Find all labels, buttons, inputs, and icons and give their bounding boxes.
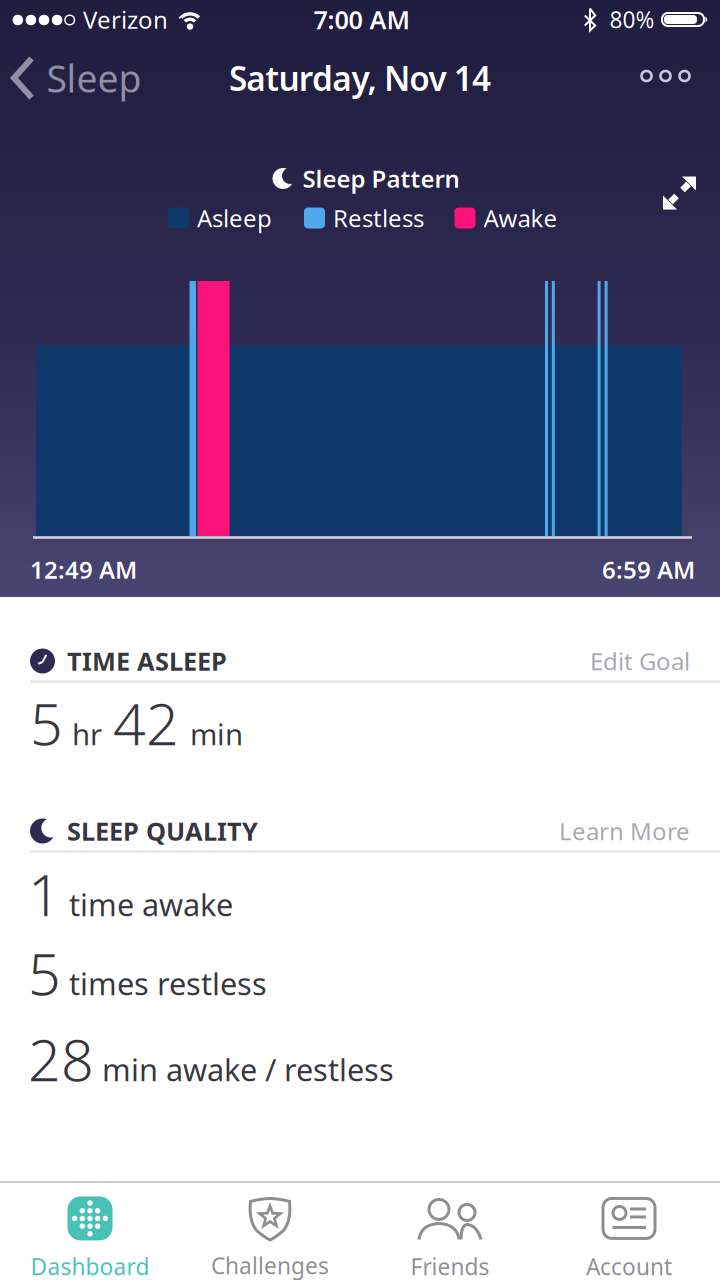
staticText: 80% [609, 4, 654, 34]
button[interactable]: Challenges [180, 1190, 360, 1280]
staticText: Challenges [211, 1250, 329, 1280]
staticText: Learn More [559, 815, 690, 847]
button[interactable]: Dashboard [0, 1191, 180, 1280]
staticText: Sleep Pattern [302, 163, 459, 194]
button[interactable]: Friends [360, 1191, 540, 1280]
staticText: min awake / restless [102, 1049, 394, 1090]
staticText: Saturday, Nov 14 [229, 56, 491, 100]
staticText: Asleep [197, 202, 272, 234]
staticText: Friends [410, 1251, 489, 1280]
staticText: Account [586, 1251, 672, 1280]
staticText: Sleep [46, 53, 141, 103]
staticText: 7:00 AM [313, 3, 410, 36]
staticText: Verizon [83, 4, 168, 35]
staticText: 28 [28, 1021, 94, 1097]
staticText: TIME ASLEEP [67, 644, 227, 678]
staticText: min [190, 714, 243, 753]
button[interactable]: Expand sleep pattern [663, 176, 696, 209]
button[interactable]: Account [539, 1192, 719, 1280]
staticText: 6:59 AM [602, 554, 695, 585]
staticText: 5 [28, 935, 61, 1011]
staticText: 1 [28, 856, 61, 932]
staticText: Edit Goal [590, 645, 690, 677]
button[interactable]: Learn More [559, 815, 690, 847]
button[interactable]: More options [641, 71, 689, 81]
staticText: SLEEP QUALITY [67, 814, 258, 848]
staticText: 42 [113, 685, 179, 761]
staticText: 12:49 AM [30, 554, 137, 585]
staticText: times restless [69, 963, 267, 1004]
button[interactable]: Edit Goal [590, 645, 690, 677]
staticText: Awake [483, 202, 557, 234]
staticText: Dashboard [30, 1251, 149, 1280]
staticText: Restless [333, 202, 424, 234]
staticText: time awake [69, 884, 233, 925]
staticText: hr [72, 714, 102, 753]
staticText: 5 [30, 685, 63, 761]
button[interactable]: Back to Sleep [10, 53, 141, 103]
